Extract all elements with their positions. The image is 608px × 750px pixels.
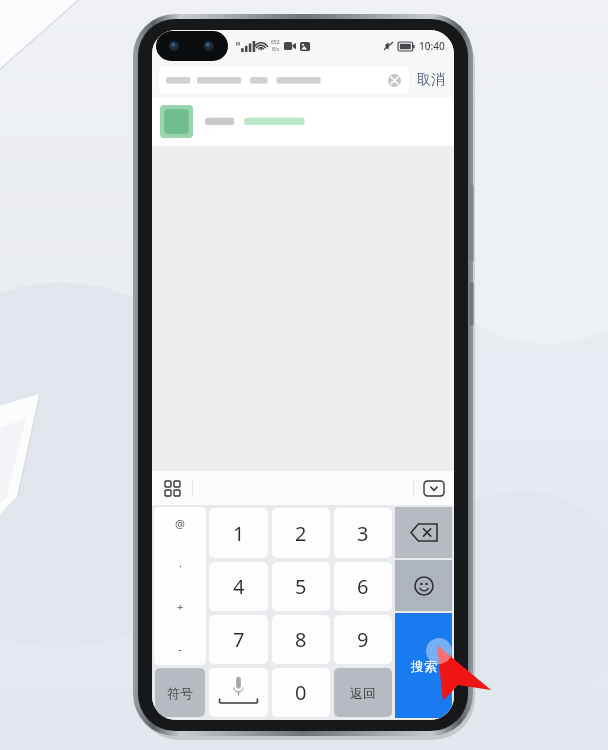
staticText: 符号 [167, 685, 193, 701]
staticText: 652 [271, 39, 280, 46]
staticText: 6 [357, 573, 369, 600]
staticText: 2 [295, 520, 307, 547]
button[interactable]: Clear [159, 67, 409, 93]
button[interactable]: 9 [334, 615, 392, 664]
button[interactable]: 返回 [334, 668, 392, 717]
staticText: · [179, 558, 182, 573]
button[interactable]: 2 [272, 508, 330, 558]
button[interactable]: 5 [272, 562, 330, 611]
button[interactable]: 6 [334, 562, 392, 611]
staticText: 10:40 [419, 39, 445, 53]
staticText: 3 [357, 520, 369, 547]
staticText: - [178, 641, 182, 656]
staticText: 4 [233, 573, 245, 600]
staticText: 搜索 [411, 658, 437, 674]
button[interactable]: 0 [272, 668, 330, 717]
button[interactable]: Keyboard panel [152, 471, 192, 505]
button[interactable]: Clear [387, 73, 402, 88]
button[interactable]: 符号 [155, 668, 205, 717]
staticText: 9 [357, 626, 369, 653]
staticText: 1 [233, 520, 245, 547]
button[interactable]: 取消 [409, 71, 447, 89]
staticText: 0 [295, 679, 307, 706]
staticText: 8 [295, 626, 307, 653]
button[interactable] [152, 97, 454, 146]
button[interactable]: Space and voice input [209, 668, 268, 717]
button[interactable]: @ [154, 507, 206, 665]
staticText: B/s [272, 46, 280, 53]
button[interactable]: 1 [209, 508, 268, 558]
staticText: + [177, 599, 184, 614]
button[interactable]: 8 [272, 615, 330, 664]
button[interactable]: Backspace [395, 507, 452, 558]
button[interactable]: Hide keyboard [414, 471, 454, 505]
button[interactable]: 4 [209, 562, 268, 611]
button[interactable]: Emoji [395, 560, 452, 611]
button[interactable]: 搜索 [395, 613, 452, 718]
staticText: 7 [233, 626, 245, 653]
staticText: @ [175, 516, 185, 531]
button[interactable]: 7 [209, 615, 268, 664]
staticText: 返回 [350, 685, 376, 701]
button[interactable]: 3 [334, 508, 392, 558]
staticText: 5 [295, 573, 307, 600]
staticText: 取消 [417, 71, 445, 89]
